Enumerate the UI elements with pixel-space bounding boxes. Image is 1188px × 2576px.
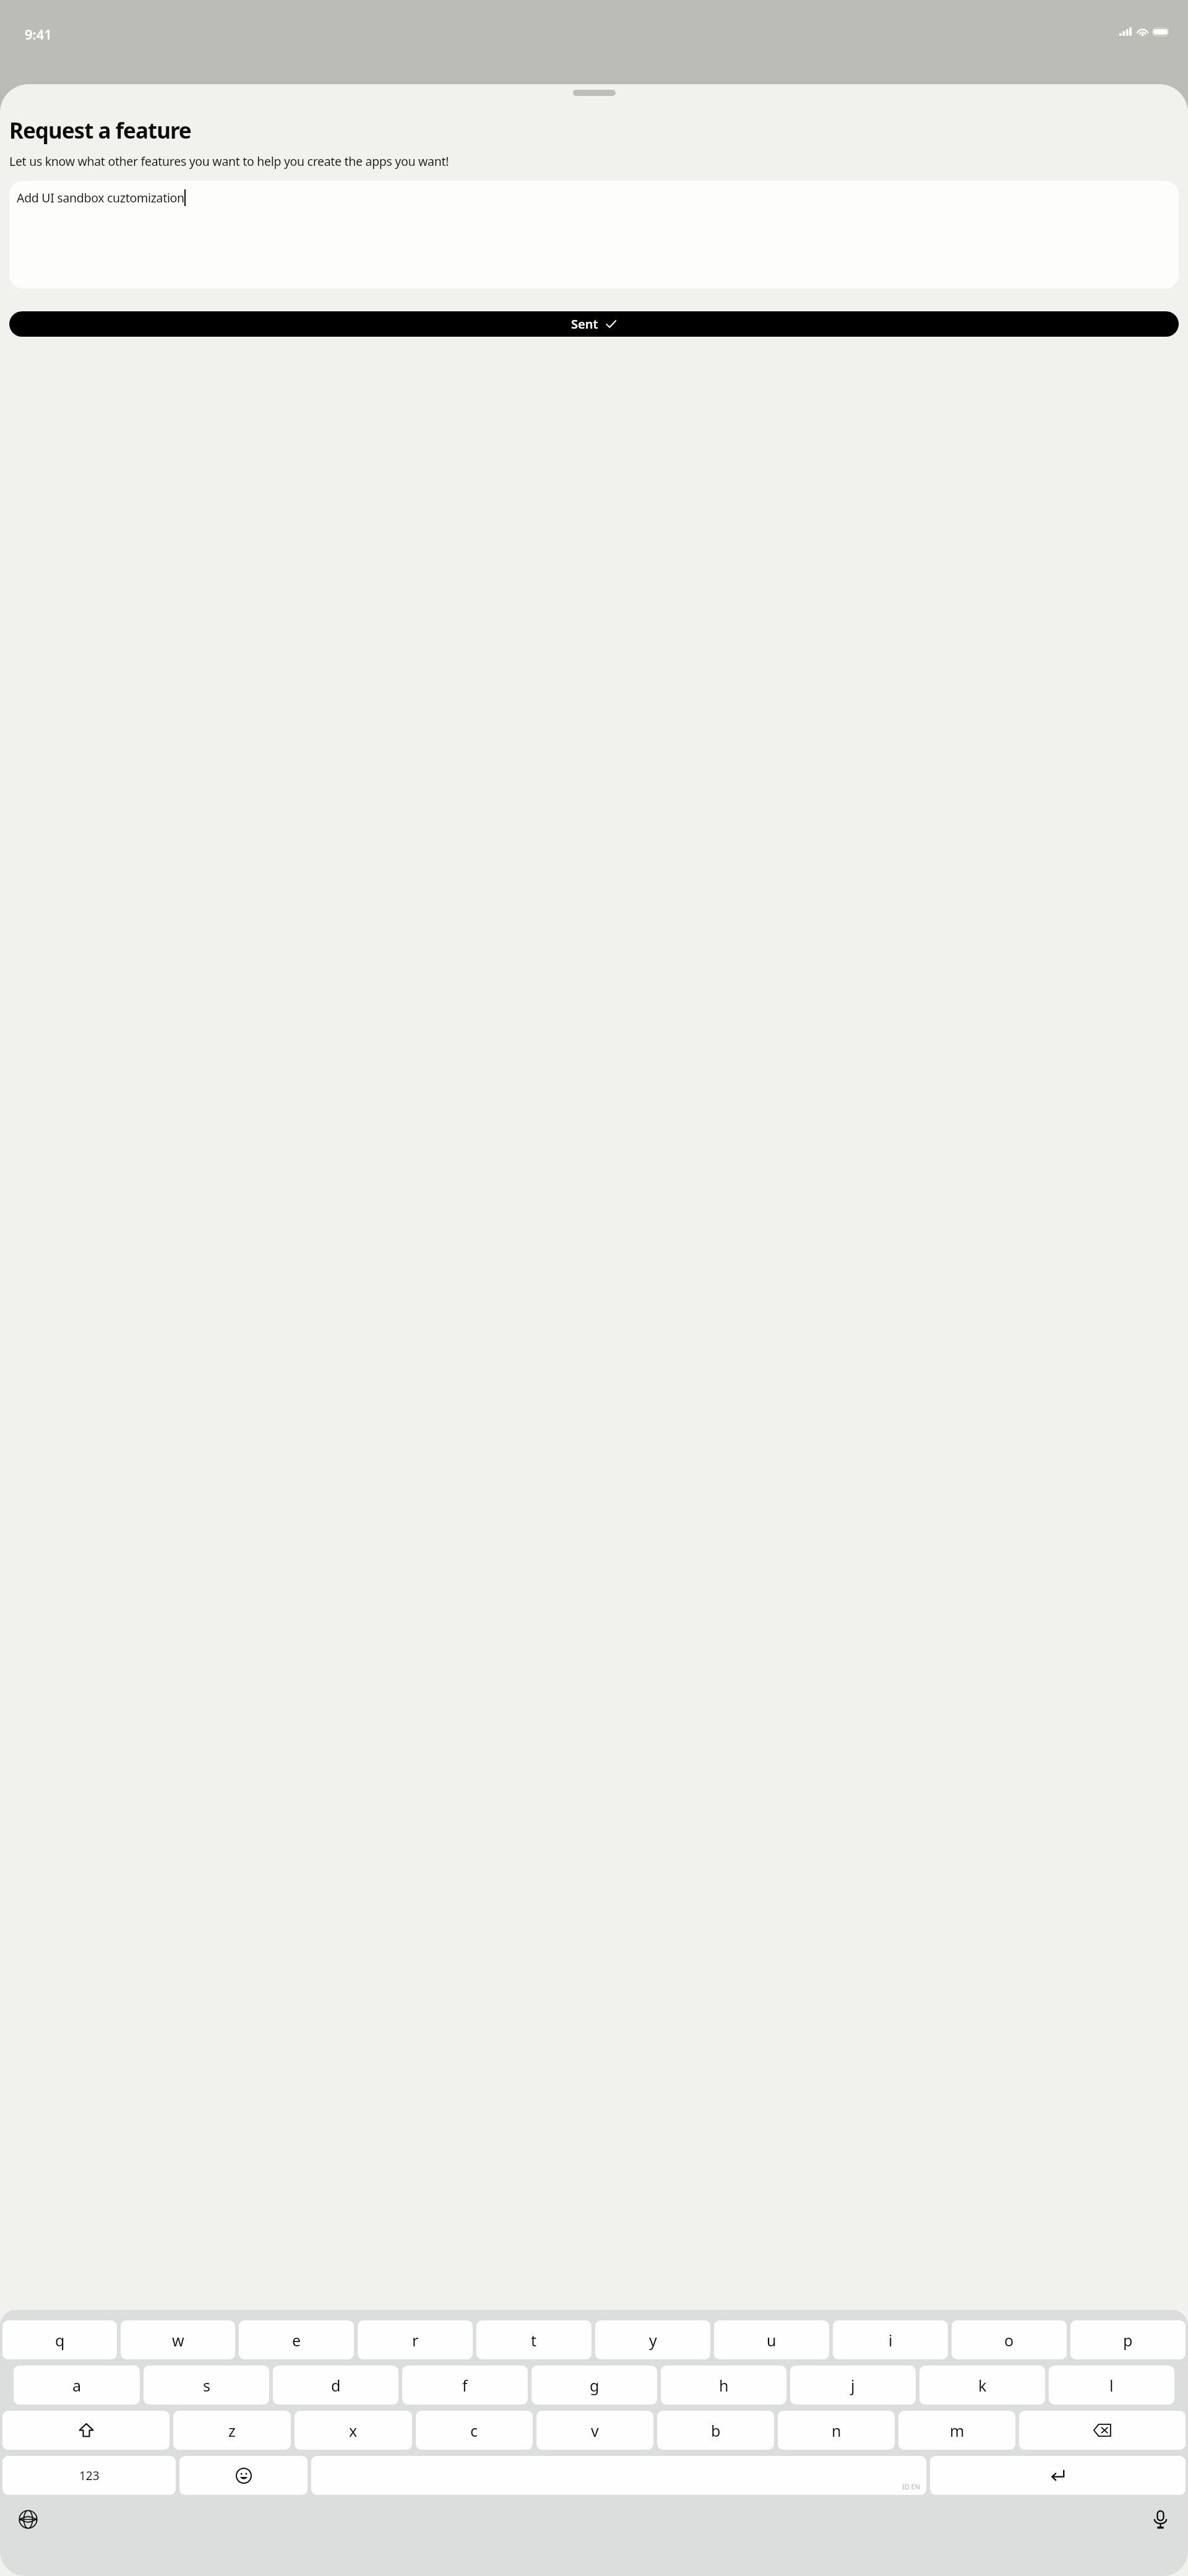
staticText: r (412, 2330, 419, 2351)
button[interactable]: Backspace (1019, 2411, 1186, 2450)
staticText: b (711, 2420, 721, 2441)
staticText: d (331, 2375, 341, 2396)
button[interactable]: k (919, 2366, 1045, 2405)
staticText: h (719, 2375, 729, 2396)
button[interactable]: p (1070, 2320, 1186, 2359)
button[interactable]: m (898, 2411, 1015, 2450)
button[interactable]: t (476, 2320, 592, 2359)
staticText: j (851, 2375, 855, 2396)
staticText: t (531, 2330, 537, 2351)
button[interactable]: c (416, 2411, 533, 2450)
staticText: x (349, 2420, 358, 2441)
button[interactable]: Sent (9, 311, 1179, 337)
staticText: q (55, 2330, 65, 2351)
staticText: m (950, 2420, 965, 2441)
button[interactable]: e (239, 2320, 354, 2359)
button[interactable]: q (2, 2320, 117, 2359)
button[interactable]: Add UI sandbox cuztomization (9, 181, 1179, 288)
staticText: l (1109, 2375, 1114, 2396)
button[interactable]: l (1049, 2366, 1174, 2405)
staticText: z (228, 2420, 236, 2441)
staticText: Request a feature (9, 116, 191, 145)
button[interactable]: Return (930, 2456, 1186, 2495)
staticText: p (1123, 2330, 1133, 2351)
button[interactable]: o (952, 2320, 1067, 2359)
button[interactable]: h (661, 2366, 786, 2405)
staticText: i (889, 2330, 893, 2351)
button[interactable]: Shift (2, 2411, 170, 2450)
button[interactable]: Change keyboard language (14, 2505, 42, 2533)
button[interactable]: 123 (2, 2456, 176, 2495)
staticText: Sent (571, 316, 598, 332)
staticText: Let us know what other features you want… (9, 153, 449, 170)
button[interactable]: i (833, 2320, 948, 2359)
button[interactable]: u (714, 2320, 829, 2359)
staticText: v (591, 2420, 599, 2441)
staticText: o (1004, 2330, 1014, 2351)
staticText: y (649, 2330, 657, 2351)
button[interactable]: b (657, 2411, 774, 2450)
staticText: n (832, 2420, 841, 2441)
button[interactable]: n (778, 2411, 895, 2450)
button[interactable]: Dictate (1146, 2505, 1174, 2533)
button[interactable]: r (358, 2320, 473, 2359)
staticText: f (462, 2375, 468, 2396)
staticText: s (203, 2375, 210, 2396)
staticText: a (72, 2375, 82, 2396)
staticText: u (767, 2330, 777, 2351)
button[interactable]: w (121, 2320, 235, 2359)
staticText: w (172, 2330, 184, 2351)
staticText: Add UI sandbox cuztomization (17, 189, 184, 206)
staticText: 9:41 (25, 25, 52, 43)
button[interactable]: Emoji (179, 2456, 308, 2495)
staticText: c (470, 2420, 478, 2441)
staticText: g (590, 2375, 600, 2396)
button[interactable]: a (14, 2366, 140, 2405)
button[interactable]: g (532, 2366, 657, 2405)
button[interactable]: x (295, 2411, 412, 2450)
staticText: 123 (79, 2468, 100, 2484)
button[interactable]: s (144, 2366, 269, 2405)
button[interactable]: z (173, 2411, 291, 2450)
staticText: ID EN (902, 2482, 921, 2491)
button[interactable]: j (790, 2366, 916, 2405)
button[interactable]: v (536, 2411, 653, 2450)
staticText: e (292, 2330, 301, 2351)
button[interactable]: y (595, 2320, 710, 2359)
staticText: k (978, 2375, 987, 2396)
button[interactable]: f (402, 2366, 528, 2405)
button[interactable]: d (273, 2366, 398, 2405)
